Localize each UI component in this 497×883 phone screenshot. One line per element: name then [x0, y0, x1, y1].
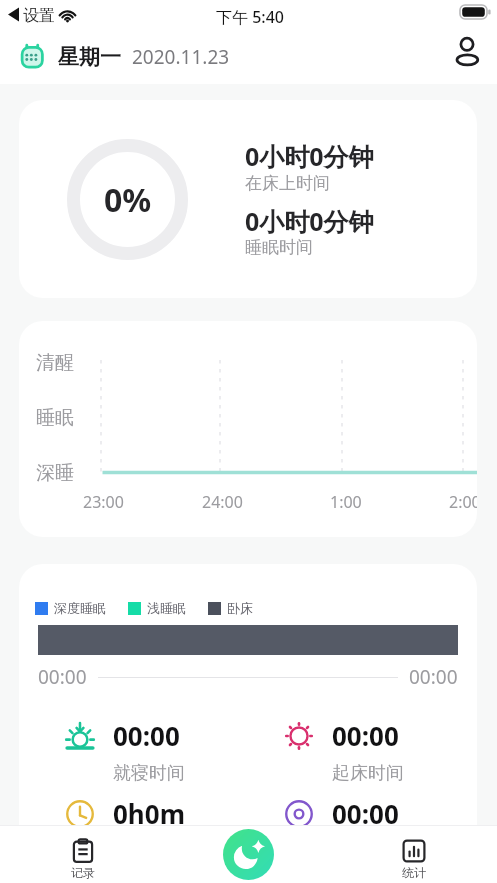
staticText: 统计 — [402, 865, 426, 880]
staticText: 在床上时间 — [245, 173, 330, 194]
staticText: 睡眠时间 — [245, 237, 313, 258]
staticText: 下午 5:40 — [216, 6, 284, 28]
staticText: 清醒 — [36, 351, 74, 375]
staticText: 星期一 — [58, 44, 121, 70]
staticText: 0% — [104, 178, 152, 222]
button[interactable]: 统计 — [384, 838, 444, 880]
button[interactable]: 清醒 — [19, 321, 477, 537]
staticText: 起床时间 — [332, 762, 404, 785]
staticText: 清醒时长 — [332, 840, 404, 863]
staticText: 00:00 — [409, 664, 458, 690]
staticText: 00:00 — [332, 796, 399, 831]
staticText: 就寝时间 — [113, 762, 185, 785]
staticText: 2020.11.23 — [132, 44, 230, 70]
staticText: 浅睡眠 — [147, 600, 186, 616]
staticText: 0小时0分钟 — [245, 204, 374, 238]
staticText: 00:00 — [113, 718, 180, 753]
staticText: 00:00 — [38, 664, 87, 690]
button[interactable]: Profile — [448, 33, 486, 71]
staticText: 0小时0分钟 — [245, 139, 374, 173]
staticText: 24:00 — [202, 491, 243, 513]
staticText: 睡眠 — [36, 406, 74, 430]
button[interactable]: 0% — [19, 100, 477, 298]
staticText: 23:00 — [83, 491, 124, 513]
button[interactable]: Start sleep — [223, 829, 274, 880]
staticText: 深睡 — [36, 461, 74, 485]
button[interactable]: 记录 — [53, 838, 113, 880]
button[interactable]: 00:00 — [65, 718, 265, 785]
staticText: 1:00 — [330, 491, 362, 513]
button[interactable]: 0h0m — [65, 796, 265, 863]
staticText: 卧床 — [227, 600, 253, 616]
staticText: 0h0m — [113, 796, 185, 831]
staticText: 深度睡眠 — [54, 600, 106, 616]
button[interactable]: 00:00 — [284, 718, 477, 785]
staticText: 设置 — [23, 6, 55, 26]
staticText: 记录 — [71, 865, 95, 880]
staticText: 2:00 — [449, 491, 477, 513]
button[interactable]: 00:00 — [284, 796, 477, 863]
staticText: 00:00 — [332, 718, 399, 753]
